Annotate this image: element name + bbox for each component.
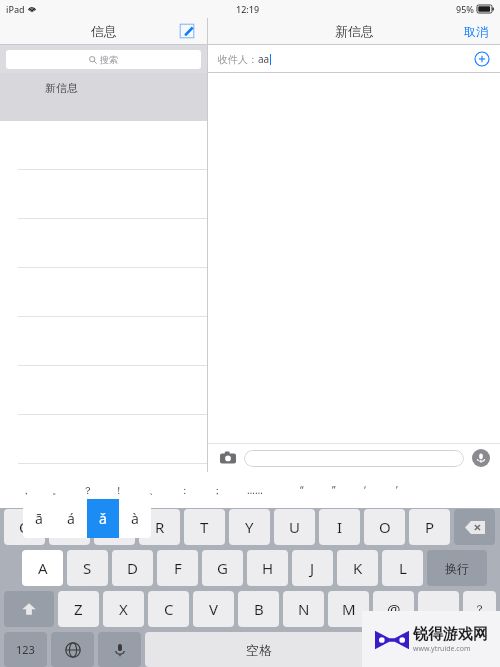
button[interactable]: R bbox=[139, 509, 180, 545]
button[interactable]: O bbox=[364, 509, 405, 545]
staticText: 12:19 bbox=[236, 3, 260, 15]
button[interactable] bbox=[0, 317, 207, 366]
button[interactable]: ？ bbox=[76, 478, 100, 502]
staticText: ” bbox=[332, 483, 336, 497]
button[interactable]: C bbox=[148, 591, 189, 627]
button[interactable]: J bbox=[292, 550, 333, 586]
button[interactable]: 换行 bbox=[427, 550, 487, 586]
button[interactable]: ： bbox=[173, 478, 197, 502]
button[interactable]: More bbox=[471, 632, 496, 667]
button[interactable]: ？ bbox=[463, 591, 496, 627]
staticText: T bbox=[200, 517, 209, 537]
button[interactable] bbox=[0, 415, 207, 464]
staticText: 。 bbox=[52, 484, 62, 497]
button[interactable]: E bbox=[94, 509, 135, 545]
staticText: 空格 bbox=[246, 642, 272, 658]
button[interactable]: ā bbox=[23, 499, 55, 538]
staticText: 收件人： bbox=[218, 53, 258, 66]
button[interactable]: I bbox=[319, 509, 360, 545]
button[interactable] bbox=[0, 268, 207, 317]
staticText: X bbox=[119, 599, 128, 619]
button[interactable]: D bbox=[112, 550, 153, 586]
button[interactable]: A bbox=[22, 550, 63, 586]
staticText: ； bbox=[212, 484, 222, 497]
staticText: ǎ bbox=[99, 509, 107, 528]
staticText: 信息 bbox=[91, 23, 117, 39]
button[interactable]: X bbox=[103, 591, 144, 627]
button[interactable]: 搜索 bbox=[6, 50, 201, 69]
button[interactable]: B bbox=[238, 591, 279, 627]
button[interactable]: U bbox=[274, 509, 315, 545]
button[interactable]: W bbox=[49, 509, 90, 545]
button[interactable]: New message bbox=[177, 21, 197, 41]
staticText: N bbox=[298, 599, 310, 619]
button[interactable]: S bbox=[67, 550, 108, 586]
button[interactable]: Emoji bbox=[377, 632, 420, 667]
button[interactable]: ； bbox=[205, 478, 229, 502]
button[interactable]: á bbox=[55, 499, 87, 538]
staticText: ， bbox=[21, 484, 31, 497]
button[interactable]: V bbox=[193, 591, 234, 627]
staticText: Q bbox=[19, 517, 31, 537]
button[interactable]: 新信息 bbox=[0, 73, 207, 121]
button[interactable]: Dictate bbox=[472, 449, 490, 467]
button[interactable]: F bbox=[157, 550, 198, 586]
staticText: W bbox=[63, 517, 77, 537]
staticText: P bbox=[425, 517, 435, 537]
staticText: 搜索 bbox=[100, 54, 118, 65]
button[interactable]: 123 bbox=[4, 632, 47, 667]
button[interactable] bbox=[0, 366, 207, 415]
button[interactable]: Add contact bbox=[474, 51, 490, 67]
staticText: ’ bbox=[396, 483, 398, 497]
staticText: ？ bbox=[474, 602, 485, 616]
button[interactable]: T bbox=[184, 509, 225, 545]
button[interactable]: Shift bbox=[4, 591, 54, 627]
button[interactable] bbox=[0, 121, 207, 170]
button[interactable]: ， bbox=[14, 478, 38, 502]
staticText: ？ bbox=[83, 484, 93, 497]
button[interactable]: N bbox=[283, 591, 324, 627]
button[interactable]: @ bbox=[373, 591, 414, 627]
staticText: www.ytruide.com bbox=[413, 644, 471, 654]
staticText: U bbox=[289, 517, 300, 537]
button[interactable]: …… bbox=[243, 478, 267, 502]
staticText: @ bbox=[387, 599, 401, 619]
button[interactable]: ’ bbox=[385, 478, 409, 502]
button[interactable]: ” bbox=[322, 478, 346, 502]
button[interactable]: H bbox=[247, 550, 288, 586]
button[interactable]: P bbox=[409, 509, 450, 545]
button[interactable]: ‘ bbox=[353, 478, 377, 502]
staticText: ‘ bbox=[364, 483, 366, 497]
button[interactable]: Z bbox=[58, 591, 99, 627]
button[interactable]: Dictate bbox=[98, 632, 141, 667]
button[interactable]: M bbox=[328, 591, 369, 627]
button[interactable]: Backspace bbox=[454, 509, 495, 545]
button[interactable]: ǎ bbox=[87, 499, 119, 538]
button[interactable]: “ bbox=[290, 478, 314, 502]
staticText: …… bbox=[247, 483, 263, 497]
button[interactable] bbox=[244, 450, 464, 467]
button[interactable]: à bbox=[119, 499, 151, 538]
button[interactable]: 。 bbox=[45, 478, 69, 502]
button[interactable]: Y bbox=[229, 509, 270, 545]
button[interactable] bbox=[0, 170, 207, 219]
staticText: ā bbox=[35, 509, 43, 528]
button[interactable]: 取消 bbox=[464, 24, 488, 39]
button[interactable] bbox=[0, 219, 207, 268]
button[interactable]: 空格 bbox=[145, 632, 373, 667]
staticText: G bbox=[217, 558, 228, 578]
staticText: L bbox=[399, 558, 407, 578]
button[interactable]: Switch keyboard bbox=[51, 632, 94, 667]
button[interactable]: Camera bbox=[220, 450, 236, 466]
button[interactable]: G bbox=[202, 550, 243, 586]
button[interactable]: L bbox=[382, 550, 423, 586]
button[interactable]: ！ bbox=[107, 478, 131, 502]
button[interactable]: ， bbox=[418, 591, 459, 627]
staticText: V bbox=[209, 599, 219, 619]
button[interactable]: K bbox=[337, 550, 378, 586]
staticText: aa bbox=[258, 52, 270, 66]
button[interactable]: Q bbox=[4, 509, 45, 545]
staticText: J bbox=[310, 558, 315, 578]
button[interactable]: 、 bbox=[142, 478, 166, 502]
button[interactable]: Hide keyboard bbox=[424, 632, 467, 667]
